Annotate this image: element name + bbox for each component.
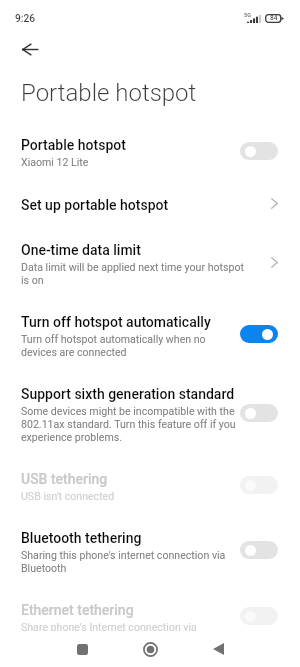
staticText: Turn off hotspot automatically when no d… [21, 333, 239, 359]
staticText: Portable hotspot [21, 136, 126, 154]
button[interactable]: Turn on [240, 476, 278, 494]
staticText: 84 [270, 14, 278, 22]
button[interactable]: Turn off [240, 325, 278, 343]
staticText: USB tethering [21, 470, 108, 488]
button[interactable]: Bluetooth tethering [0, 516, 300, 588]
staticText: Xiaomi 12 Lite [21, 156, 89, 169]
staticText: Data limit will be applied next time you… [21, 261, 245, 287]
staticText: USB isn't connected [21, 490, 115, 503]
button[interactable]: One-time data limit [0, 228, 300, 300]
staticText: Ethernet tethering [21, 601, 134, 619]
button[interactable]: Recents [48, 631, 116, 667]
button[interactable]: Back [184, 631, 252, 667]
staticText: Share phone's Internet connection via [21, 621, 197, 634]
button[interactable]: Turn off hotspot automatically [0, 300, 300, 372]
button[interactable]: Ethernet tethering [0, 588, 300, 647]
button[interactable]: Back [13, 36, 47, 63]
staticText: Turn off hotspot automatically [21, 313, 211, 331]
button[interactable]: Set up portable hotspot [0, 182, 300, 228]
button[interactable]: Turn on [240, 607, 278, 625]
staticText: Sharing this phone's internet connection… [21, 549, 239, 575]
button[interactable]: USB tethering [0, 457, 300, 516]
staticText: Bluetooth tethering [21, 529, 142, 547]
staticText: Some devices might be incompatible with … [21, 405, 239, 444]
staticText: Portable hotspot [21, 79, 197, 107]
button[interactable]: Turn on [240, 404, 278, 422]
staticText: 9:26 [15, 13, 36, 25]
button[interactable]: Home [116, 631, 184, 667]
staticText: One-time data limit [21, 241, 141, 259]
button[interactable]: Support sixth generation standard [0, 372, 300, 457]
button[interactable]: Turn on [240, 142, 278, 160]
staticText: Set up portable hotspot [21, 196, 169, 214]
staticText: Support sixth generation standard [21, 385, 235, 403]
staticText: 5G [244, 12, 251, 19]
button[interactable]: Turn on [240, 541, 278, 559]
button[interactable]: Portable hotspot [0, 123, 300, 182]
